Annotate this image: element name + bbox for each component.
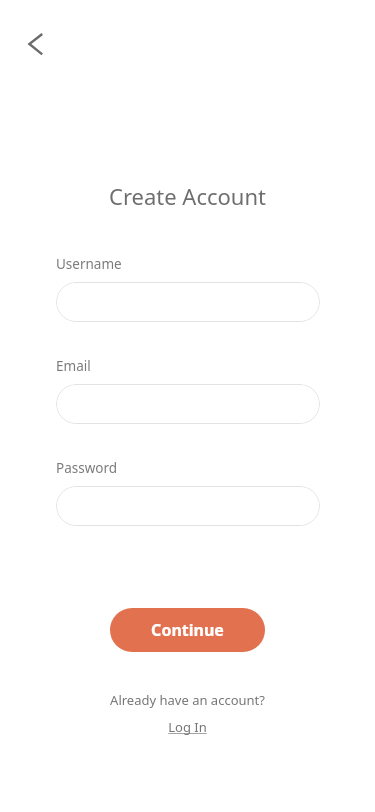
staticText: Password <box>56 459 118 477</box>
button[interactable]: Back <box>12 20 60 68</box>
button[interactable] <box>56 486 320 526</box>
staticText: Log In <box>168 718 207 736</box>
button[interactable]: Log In <box>162 717 213 737</box>
staticText: Username <box>56 255 122 273</box>
button[interactable]: Continue <box>110 608 265 652</box>
staticText: Continue <box>151 619 224 641</box>
staticText: Create Account <box>109 181 266 211</box>
button[interactable] <box>56 384 320 424</box>
button[interactable] <box>56 282 320 322</box>
staticText: Already have an account? <box>110 691 265 709</box>
staticText: Email <box>56 357 91 375</box>
